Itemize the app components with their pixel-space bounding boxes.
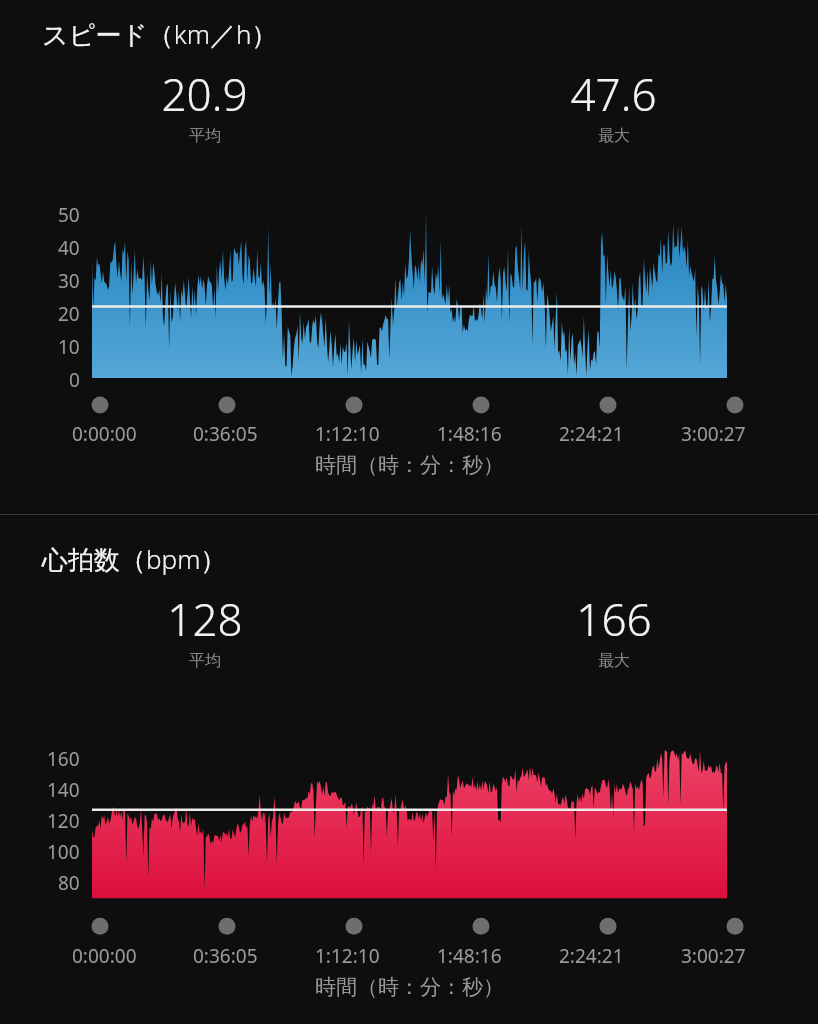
staticText: 時間（時：分：秒）: [315, 452, 504, 478]
staticText: 0:00:00: [72, 421, 137, 447]
staticText: 10: [58, 334, 80, 360]
staticText: 2:24:21: [559, 421, 624, 447]
staticText: 1:48:16: [437, 421, 502, 447]
button[interactable]: スピード（km／h）: [0, 0, 818, 514]
staticText: 128: [167, 589, 243, 649]
button[interactable]: 47.6: [409, 64, 818, 146]
button[interactable]: 20.9: [0, 64, 409, 146]
staticText: 120: [47, 808, 80, 834]
staticText: 80: [58, 870, 80, 896]
staticText: スピード（km／h）: [42, 16, 278, 52]
staticText: 30: [58, 268, 80, 294]
staticText: 1:12:10: [315, 943, 380, 969]
staticText: 40: [58, 235, 80, 261]
staticText: 20: [58, 301, 80, 327]
staticText: 3:00:27: [681, 943, 746, 969]
staticText: 時間（時：分：秒）: [315, 974, 504, 1000]
button[interactable]: 心拍数（bpm）: [0, 515, 818, 1024]
staticText: 50: [58, 202, 80, 228]
staticText: 47.6: [570, 64, 657, 124]
staticText: 0:36:05: [193, 943, 258, 969]
staticText: 1:48:16: [437, 943, 502, 969]
staticText: 1:12:10: [315, 421, 380, 447]
button[interactable]: 166: [409, 589, 818, 671]
staticText: 平均: [189, 651, 221, 671]
staticText: 166: [576, 589, 652, 649]
staticText: 100: [47, 839, 80, 865]
staticText: 20.9: [161, 64, 248, 124]
staticText: 心拍数（bpm）: [42, 541, 227, 577]
staticText: 0:00:00: [72, 943, 137, 969]
staticText: 2:24:21: [559, 943, 624, 969]
button[interactable]: 128: [0, 589, 409, 671]
staticText: 160: [47, 746, 80, 772]
staticText: 最大: [598, 126, 630, 146]
staticText: 最大: [598, 651, 630, 671]
staticText: 0:36:05: [193, 421, 258, 447]
staticText: 3:00:27: [681, 421, 746, 447]
staticText: 0: [69, 367, 80, 393]
staticText: 平均: [189, 126, 221, 146]
staticText: 140: [47, 777, 80, 803]
